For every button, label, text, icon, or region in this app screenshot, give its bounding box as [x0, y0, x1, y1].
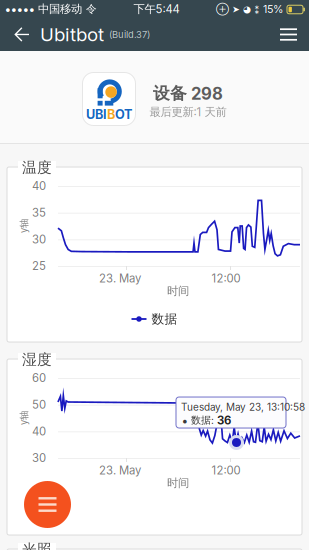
staticText: 50 [32, 398, 46, 411]
staticText: ⊕ ➤ ◕ ⁑ [216, 3, 259, 15]
staticText: 15% [263, 2, 283, 15]
staticText: 时间 [167, 284, 189, 298]
staticText: B [107, 107, 115, 122]
staticText: Ubitbot [40, 23, 104, 46]
staticText: 60 [32, 371, 46, 385]
staticText: 数据 [151, 311, 177, 327]
staticText: 40 [32, 179, 46, 193]
button[interactable]: Menu [268, 18, 309, 51]
staticText: 30 [32, 232, 46, 246]
staticText: 时间 [167, 476, 189, 490]
staticText: 设备 298 [153, 83, 223, 104]
staticText: 12:00 [211, 464, 240, 477]
staticText: 数据: [191, 414, 214, 427]
staticText: 温度 [22, 158, 52, 177]
staticText: 湿度 [22, 350, 52, 369]
staticText: 下午5:44 [133, 2, 179, 16]
staticText: OT [115, 107, 132, 122]
staticText: 12:00 [211, 272, 240, 285]
staticText: 光照 [22, 540, 52, 550]
staticText: 36 [217, 413, 231, 427]
staticText: 令 [86, 2, 97, 16]
staticText: 中国移动 [38, 2, 82, 16]
staticText: 25 [32, 259, 46, 273]
staticText: 30 [32, 451, 46, 465]
staticText: 40 [32, 424, 46, 438]
staticText: Tuesday, May 23, 13:10:58 [181, 401, 305, 413]
staticText: ••••• [5, 2, 35, 16]
staticText: y轴 [17, 220, 31, 232]
button[interactable]: Back [0, 18, 40, 51]
staticText: 23. May [99, 464, 141, 477]
staticText: UBI [86, 107, 107, 122]
staticText: (Build.37) [109, 29, 150, 40]
staticText: 35 [32, 206, 46, 219]
staticText: y轴 [17, 412, 31, 424]
button[interactable]: Menu [24, 481, 71, 528]
staticText: • [182, 413, 188, 427]
staticText: 23. May [99, 272, 141, 285]
staticText: 最后更新:1 天前 [149, 105, 226, 119]
